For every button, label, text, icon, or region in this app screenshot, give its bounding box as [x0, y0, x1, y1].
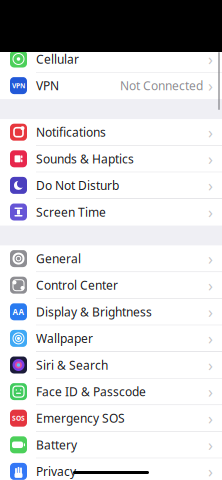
button[interactable]: General	[0, 246, 222, 272]
staticText: ›	[208, 301, 213, 322]
staticText: AA	[12, 306, 24, 317]
staticText: ›	[208, 408, 213, 429]
button[interactable]: Privacy	[0, 458, 222, 480]
staticText: ›	[208, 354, 213, 376]
staticText: Face ID & Passcode	[36, 384, 146, 399]
button[interactable]: Battery	[0, 432, 222, 458]
button[interactable]: Notifications	[0, 119, 222, 146]
staticText: ›	[208, 434, 213, 455]
staticText: ›	[208, 122, 213, 143]
button[interactable]: Siri & Search	[0, 352, 222, 379]
staticText: Siri & Search	[36, 357, 108, 373]
staticText: Control Center	[36, 277, 118, 293]
button[interactable]: Screen Time	[0, 199, 222, 226]
staticText: ›	[208, 201, 213, 223]
button[interactable]: Do Not Disturb	[0, 172, 222, 199]
staticText: ›	[208, 461, 213, 480]
staticText: ›	[208, 75, 213, 96]
button[interactable]: Wallpaper	[0, 325, 222, 352]
staticText: Notifications	[36, 124, 106, 140]
staticText: VPN	[12, 81, 25, 90]
staticText: Screen Time	[36, 204, 106, 220]
button[interactable]: SOS	[0, 405, 222, 432]
staticText: Emergency SOS	[36, 410, 125, 426]
staticText: ›	[208, 148, 213, 169]
staticText: ›	[208, 275, 213, 296]
button[interactable]: AA	[0, 299, 222, 325]
button[interactable]: Cellular	[0, 46, 222, 73]
staticText: VPN	[36, 78, 59, 93]
staticText: ›	[208, 175, 213, 196]
button[interactable]: Control Center	[0, 272, 222, 299]
staticText: Privacy	[36, 463, 76, 479]
button[interactable]: VPN	[0, 73, 222, 99]
staticText: ›	[208, 328, 213, 349]
staticText: Battery	[36, 437, 77, 453]
staticText: ›	[208, 248, 213, 269]
staticText: Cellular	[36, 51, 79, 67]
staticText: Sounds & Haptics	[36, 151, 134, 167]
staticText: General	[36, 251, 81, 266]
staticText: Not Connected	[120, 78, 203, 93]
staticText: Display & Brightness	[36, 304, 152, 320]
staticText: SOS	[12, 414, 25, 423]
staticText: ›	[208, 48, 213, 70]
staticText: ›	[208, 381, 213, 402]
staticText: Do Not Disturb	[36, 177, 119, 193]
button[interactable]: Sounds & Haptics	[0, 146, 222, 172]
staticText: Wallpaper	[36, 330, 93, 346]
button[interactable]: Face ID & Passcode	[0, 379, 222, 405]
